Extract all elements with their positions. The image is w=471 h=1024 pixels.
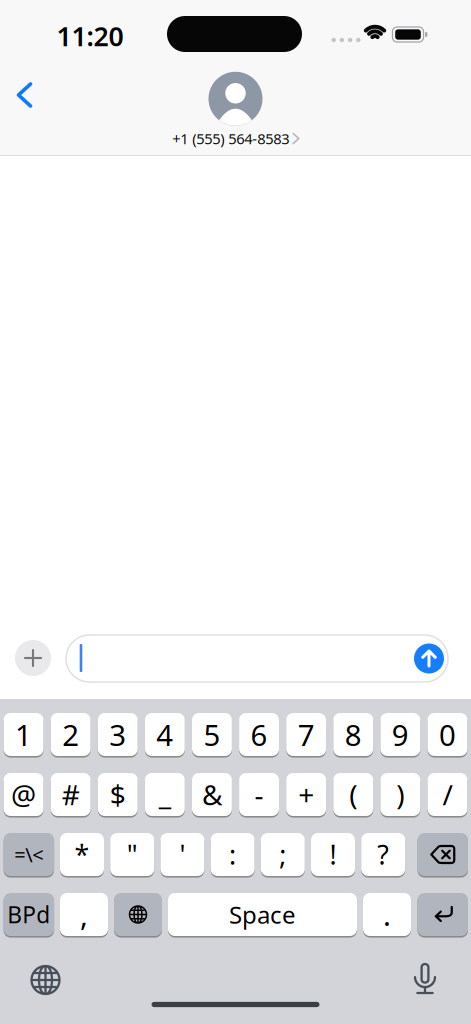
staticText: 4 <box>156 715 173 754</box>
button[interactable]: ( <box>333 772 373 817</box>
button[interactable]: =\< <box>4 832 54 877</box>
button[interactable]: ) <box>380 772 420 817</box>
button[interactable]: + <box>286 772 326 817</box>
staticText: 1 <box>15 715 32 754</box>
button[interactable]: , <box>60 892 108 937</box>
staticText: - <box>255 776 264 813</box>
button[interactable]: Next keyboard <box>114 892 162 937</box>
button[interactable]: $ <box>98 772 138 817</box>
staticText: ; <box>279 837 286 872</box>
staticText: _ <box>159 776 171 813</box>
button[interactable]: 6 <box>239 712 279 757</box>
button[interactable]: Dictate <box>407 956 443 1002</box>
button[interactable]: # <box>51 772 91 817</box>
button[interactable]: 3 <box>98 712 138 757</box>
button[interactable]: Switch keyboard <box>23 958 67 1002</box>
staticText: 6 <box>251 715 268 754</box>
staticText: 7 <box>298 715 315 754</box>
staticText: ) <box>396 776 404 813</box>
button[interactable]: * <box>60 832 104 877</box>
staticText: ! <box>329 837 336 872</box>
button[interactable]: 4 <box>145 712 185 757</box>
button[interactable]: " <box>110 832 154 877</box>
button[interactable]: More options <box>15 640 51 676</box>
button[interactable]: Space <box>168 892 357 937</box>
button[interactable]: 5 <box>192 712 232 757</box>
staticText: / <box>442 776 452 813</box>
staticText: 0 <box>439 715 456 754</box>
staticText: BPd <box>7 899 50 929</box>
button[interactable]: Delete <box>417 832 468 877</box>
staticText: 11:20 <box>56 18 123 54</box>
staticText: & <box>202 776 222 813</box>
staticText: =\< <box>14 841 43 868</box>
button[interactable]: Contact +1 (555) 564-8583 <box>172 72 299 148</box>
button[interactable]: : <box>211 832 255 877</box>
staticText: : <box>229 837 236 872</box>
staticText: Space <box>229 899 296 930</box>
button[interactable]: _ <box>145 772 185 817</box>
button[interactable]: 7 <box>286 712 326 757</box>
button[interactable]: ' <box>160 832 204 877</box>
staticText: 9 <box>392 715 409 754</box>
staticText: * <box>74 837 89 872</box>
button[interactable]: Back <box>8 74 40 116</box>
staticText: , <box>80 895 88 934</box>
staticText: ' <box>179 837 185 872</box>
button[interactable]: - <box>239 772 279 817</box>
button[interactable]: ; <box>261 832 305 877</box>
button[interactable]: 1 <box>4 712 43 757</box>
staticText: +1 (555) 564-8583 <box>172 129 289 148</box>
button[interactable]: ! <box>311 832 355 877</box>
staticText: . <box>383 895 391 934</box>
button[interactable]: . <box>363 892 411 937</box>
staticText: @ <box>11 776 36 813</box>
staticText: ? <box>377 837 389 872</box>
staticText: 2 <box>62 715 79 754</box>
button[interactable]: 9 <box>380 712 420 757</box>
button[interactable]: Send <box>414 643 444 673</box>
staticText: 8 <box>345 715 362 754</box>
button[interactable]: @ <box>4 772 43 817</box>
staticText: ( <box>349 776 357 813</box>
staticText: $ <box>110 776 126 813</box>
button[interactable]: ? <box>361 832 405 877</box>
button[interactable]: BPd <box>4 892 54 937</box>
button[interactable]: 2 <box>51 712 91 757</box>
staticText: # <box>62 776 80 813</box>
button[interactable]: Return <box>417 892 468 937</box>
button[interactable]: & <box>192 772 232 817</box>
button[interactable]: 8 <box>333 712 373 757</box>
staticText: + <box>298 776 314 813</box>
staticText: 3 <box>109 715 126 754</box>
button[interactable]: 0 <box>427 712 467 757</box>
button[interactable]: / <box>427 772 467 817</box>
staticText: 5 <box>203 715 220 754</box>
staticText: " <box>127 837 138 872</box>
